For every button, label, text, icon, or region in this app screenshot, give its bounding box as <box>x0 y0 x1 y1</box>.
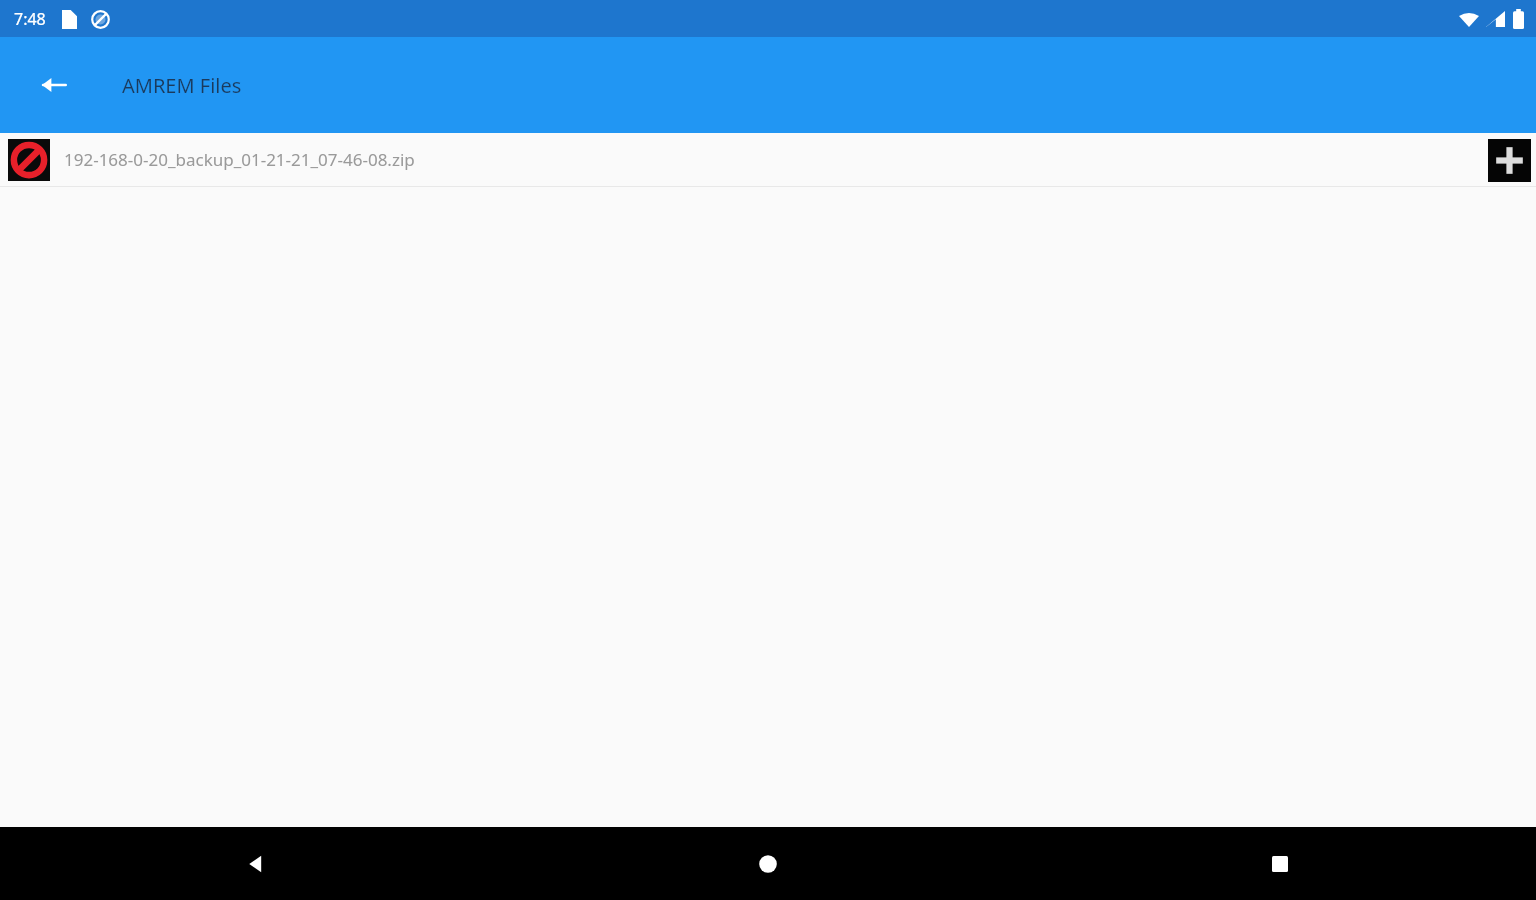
button[interactable]: Home <box>512 827 1024 900</box>
button[interactable]: Add <box>1485 136 1533 184</box>
staticText: 7:48 <box>14 8 46 30</box>
button[interactable]: Back <box>0 827 512 900</box>
staticText: 192-168-0-20_backup_01-21-21_07-46-08.zi… <box>64 148 1485 171</box>
button[interactable]: 192-168-0-20_backup_01-21-21_07-46-08.zi… <box>0 133 1536 186</box>
button[interactable]: Back <box>30 61 78 109</box>
button[interactable]: Recent apps <box>1024 827 1536 900</box>
staticText: AMREM Files <box>122 72 242 99</box>
